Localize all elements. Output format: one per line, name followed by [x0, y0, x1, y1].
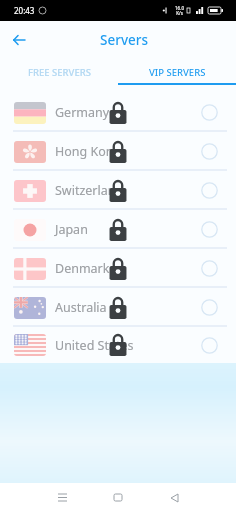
button[interactable]: Back — [154, 483, 194, 512]
staticText: Australia — [55, 299, 107, 316]
staticText: VIP SERVERS — [149, 66, 206, 79]
staticText: 20:43 — [14, 5, 35, 16]
button[interactable]: Denmark — [0, 249, 236, 288]
staticText: Servers — [100, 31, 149, 49]
staticText: Germany — [55, 104, 110, 121]
staticText: Hong Kong — [55, 143, 122, 160]
button[interactable]: Japan — [0, 210, 236, 249]
staticText: 16.0 K/s — [175, 5, 184, 16]
button[interactable]: Germany — [0, 93, 236, 132]
button[interactable]: United States — [0, 327, 236, 363]
button[interactable]: Australia — [0, 288, 236, 327]
button[interactable]: Recent apps — [42, 483, 82, 512]
staticText: Japan — [55, 221, 88, 238]
staticText: United States — [55, 337, 134, 354]
button[interactable]: Home — [98, 483, 138, 512]
staticText: Switzerland — [55, 182, 124, 199]
button[interactable]: Switzerland — [0, 171, 236, 210]
staticText: FREE SERVERS — [28, 66, 91, 79]
button[interactable]: Hong Kong — [0, 132, 236, 171]
button[interactable]: VIP SERVERS — [118, 59, 236, 85]
staticText: Denmark — [55, 260, 110, 277]
button[interactable]: FREE SERVERS — [0, 59, 118, 85]
button[interactable]: Back — [7, 28, 31, 52]
